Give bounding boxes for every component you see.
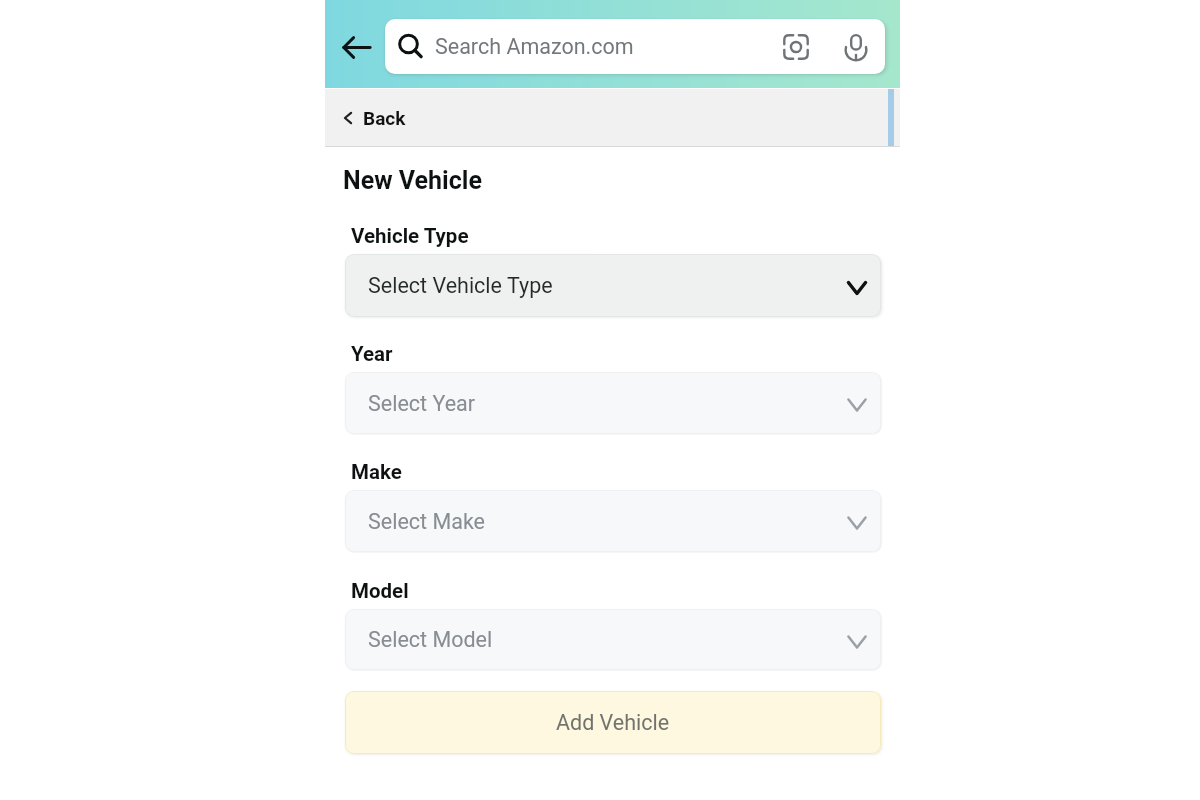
- staticText: Vehicle Type: [351, 224, 469, 248]
- button[interactable]: Search by voice: [836, 27, 876, 67]
- button[interactable]: Search Amazon.com: [385, 19, 885, 74]
- button[interactable]: Select Make: [345, 490, 881, 552]
- staticText: Back: [363, 107, 406, 129]
- staticText: Year: [351, 342, 393, 366]
- button[interactable]: Back: [325, 89, 424, 147]
- button[interactable]: Select Year: [345, 372, 881, 434]
- staticText: Select Vehicle Type: [368, 273, 553, 298]
- staticText: Search Amazon.com: [435, 34, 634, 59]
- button[interactable]: Search with camera: [776, 27, 816, 67]
- staticText: Make: [351, 460, 402, 484]
- staticText: Model: [351, 579, 409, 603]
- staticText: Add Vehicle: [556, 710, 670, 735]
- staticText: Select Make: [368, 509, 485, 534]
- button[interactable]: Back: [333, 24, 379, 70]
- staticText: New Vehicle: [343, 166, 482, 195]
- button[interactable]: Select Model: [345, 609, 881, 670]
- button[interactable]: Add Vehicle: [345, 691, 881, 754]
- staticText: Select Model: [368, 627, 493, 652]
- staticText: Select Year: [368, 391, 476, 416]
- button[interactable]: Select Vehicle Type: [345, 254, 881, 317]
